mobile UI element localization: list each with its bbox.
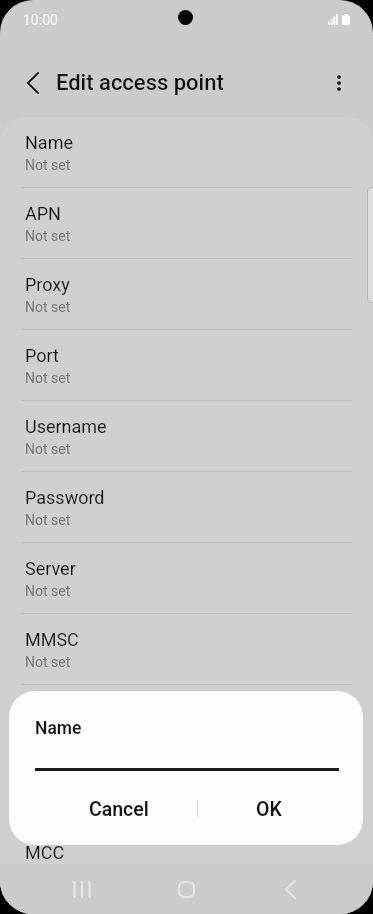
staticText: Not set xyxy=(25,299,71,315)
button[interactable]: Cancel xyxy=(40,790,197,828)
staticText: Not set xyxy=(25,725,71,741)
staticText: Name xyxy=(35,718,82,739)
staticText: Cancel xyxy=(89,798,149,821)
staticText: Proxy xyxy=(25,274,70,295)
staticText: Edit access point xyxy=(56,70,224,96)
button[interactable]: OK xyxy=(198,790,339,828)
staticText: OK xyxy=(256,798,282,821)
button[interactable]: MMSC xyxy=(0,614,373,685)
button[interactable]: Proxy xyxy=(0,259,373,330)
staticText: MMSC xyxy=(25,629,79,650)
staticText: Not set xyxy=(25,654,71,670)
staticText: APN xyxy=(25,203,61,224)
button[interactable]: Home xyxy=(162,864,210,914)
staticText: Not set xyxy=(25,583,71,599)
staticText: Not set xyxy=(25,157,71,173)
button[interactable]: Server xyxy=(0,543,373,614)
staticText: 10:00 xyxy=(23,12,58,28)
button[interactable]: Username xyxy=(0,401,373,472)
button[interactable]: More options xyxy=(317,61,361,105)
staticText: Not set xyxy=(25,370,71,386)
staticText: MNC xyxy=(25,898,66,914)
button[interactable]: MMS port xyxy=(0,756,373,827)
staticText: Server xyxy=(25,558,76,579)
button[interactable]: Recent apps xyxy=(58,864,106,914)
button[interactable]: Navigate up xyxy=(10,61,54,105)
staticText: Port xyxy=(25,345,59,366)
staticText: Not set xyxy=(25,228,71,244)
button[interactable]: MCC xyxy=(0,827,373,898)
staticText: Name xyxy=(25,132,73,153)
button[interactable]: Password xyxy=(0,472,373,543)
staticText: Not set xyxy=(25,512,71,528)
button[interactable]: APN xyxy=(0,188,373,259)
button[interactable]: MNC xyxy=(0,898,373,914)
staticText: Not set xyxy=(25,441,71,457)
staticText: Password xyxy=(25,487,105,508)
button[interactable]: Port xyxy=(0,330,373,401)
staticText: Username xyxy=(25,416,107,437)
button[interactable]: Name xyxy=(0,117,373,188)
staticText: MCC xyxy=(25,842,65,863)
button[interactable]: MMS proxy xyxy=(0,685,373,756)
button[interactable]: Back xyxy=(266,864,314,914)
